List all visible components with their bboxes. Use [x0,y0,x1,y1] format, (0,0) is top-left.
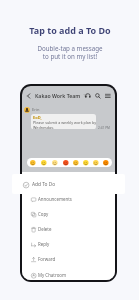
staticText: 13 [83,93,88,98]
button[interactable]: Announcements [22,192,115,206]
staticText: Tap to add a To Do [29,24,111,36]
staticText: Erin [32,107,40,112]
staticText: Kakao Work Team [35,92,81,99]
button[interactable]: Search [94,92,101,99]
staticText: Announcements [38,196,72,202]
button[interactable]: My Chatroom [22,268,115,280]
staticText: 2:41 PM [98,126,110,130]
button[interactable]: Forward [22,252,115,266]
button[interactable]: Back [25,92,33,100]
staticText: Wednesday. [33,125,54,129]
button[interactable]: Add To Do [12,174,125,194]
staticText: My Chatroom [38,272,67,278]
staticText: Double-tap a message to put it on my lis… [37,44,103,61]
button[interactable]: Reply [22,237,115,251]
staticText: Delete [38,226,52,232]
staticText: Reply [38,241,50,247]
button[interactable]: Add reaction [27,158,112,167]
button[interactable]: Delete [22,222,115,236]
staticText: Add To Do [32,181,56,188]
button[interactable]: Call [84,92,91,99]
button[interactable]: Copy [22,207,115,221]
staticText: Copy [38,211,49,217]
staticText: Please submit a weekly work plan by [33,120,96,125]
staticText: Forward [38,256,56,262]
staticText: EoD, [33,115,42,120]
button[interactable]: Menu [104,92,111,99]
